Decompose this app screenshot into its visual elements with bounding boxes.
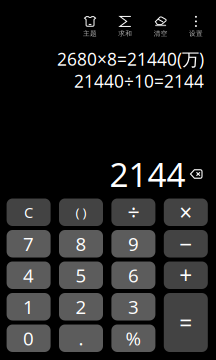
button[interactable]: + [164, 261, 208, 289]
staticText: 0 [23, 326, 34, 351]
staticText: . [78, 326, 83, 351]
button[interactable]: 3 [111, 293, 155, 320]
staticText: × [179, 197, 192, 227]
button[interactable]: − [164, 230, 208, 257]
button[interactable]: 6 [111, 261, 155, 289]
staticText: 4 [23, 263, 34, 288]
button[interactable]: 1 [7, 293, 51, 320]
button[interactable]: 清空 [143, 13, 178, 41]
button[interactable]: = [164, 293, 208, 352]
staticText: 清空 [154, 29, 168, 38]
button[interactable]: ( ) [59, 198, 103, 226]
button[interactable]: 主题 [72, 13, 107, 41]
button[interactable]: 4 [7, 261, 51, 289]
staticText: 1 [23, 294, 34, 319]
staticText: 主题 [83, 29, 97, 38]
staticText: ÷ [127, 198, 139, 226]
staticText: % [125, 326, 141, 351]
button[interactable]: 5 [59, 261, 103, 289]
button[interactable]: 8 [59, 230, 103, 257]
staticText: − [179, 229, 192, 259]
staticText: 21440÷10=2144 [74, 69, 204, 92]
button[interactable]: Delete [185, 164, 202, 184]
staticText: 2680×8=21440(万) [57, 47, 204, 70]
staticText: 5 [75, 263, 86, 288]
staticText: 求和 [118, 29, 132, 38]
button[interactable]: 求和 [108, 13, 143, 41]
button[interactable]: 7 [7, 230, 51, 257]
button[interactable]: C [7, 198, 51, 226]
button[interactable]: ÷ [111, 198, 155, 226]
button[interactable]: 9 [111, 230, 155, 257]
button[interactable]: × [164, 198, 208, 226]
staticText: 7 [23, 231, 34, 256]
button[interactable]: 0 [7, 324, 51, 352]
staticText: 8 [75, 231, 86, 256]
staticText: 3 [128, 294, 139, 319]
staticText: 9 [128, 231, 139, 256]
staticText: + [179, 260, 192, 290]
button[interactable]: 设置 [178, 13, 213, 41]
staticText: 6 [128, 263, 139, 288]
staticText: 2 [75, 294, 86, 319]
button[interactable]: . [59, 324, 103, 352]
staticText: = [179, 307, 192, 337]
staticText: C [24, 202, 33, 222]
button[interactable]: % [111, 324, 155, 352]
button[interactable]: 2 [59, 293, 103, 320]
staticText: 2144 [109, 152, 185, 196]
staticText: 设置 [189, 29, 203, 38]
staticText: ( ) [75, 203, 86, 221]
